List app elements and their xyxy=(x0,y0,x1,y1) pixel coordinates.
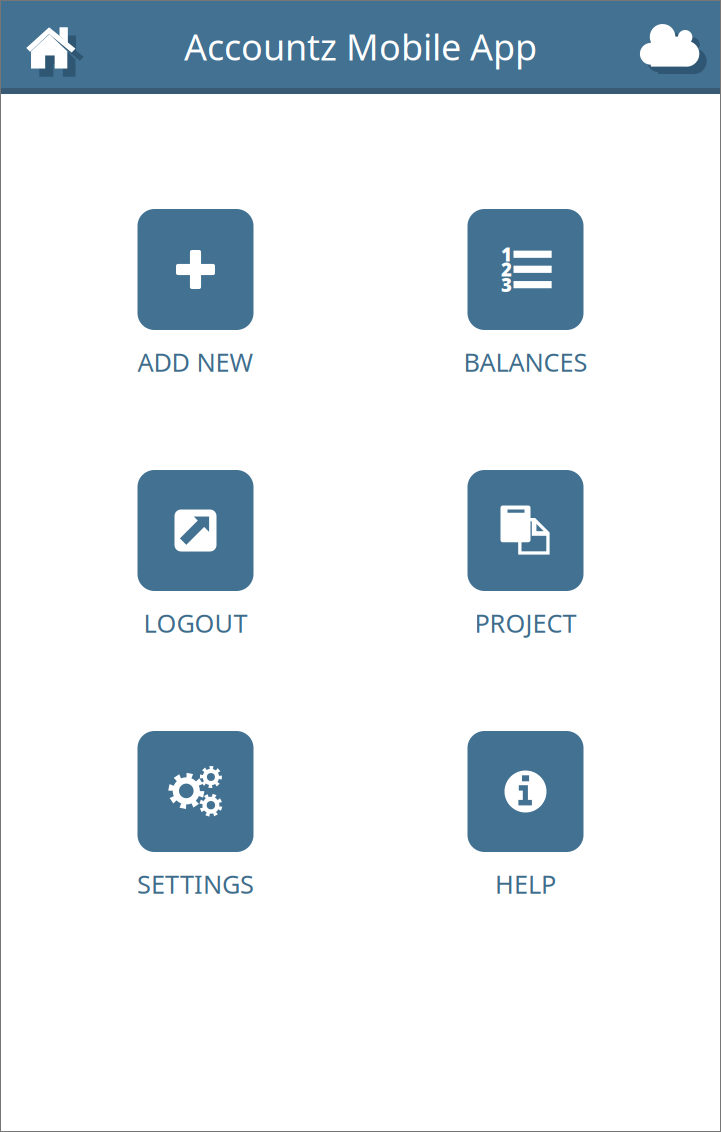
button[interactable]: Cloud sync xyxy=(611,0,721,88)
button[interactable]: Home xyxy=(0,0,110,88)
staticText: HELP xyxy=(495,867,556,901)
staticText: LOGOUT xyxy=(143,606,247,640)
staticText: ADD NEW xyxy=(137,345,253,379)
button[interactable]: SETTINGS xyxy=(45,731,345,897)
button[interactable]: 1 xyxy=(375,209,675,375)
staticText: BALANCES xyxy=(463,345,587,379)
button[interactable]: LOGOUT xyxy=(45,470,345,636)
staticText: 1 xyxy=(501,242,512,267)
staticText: 3 xyxy=(501,272,512,297)
button[interactable]: PROJECT xyxy=(375,470,675,636)
staticText: SETTINGS xyxy=(137,867,254,901)
staticText: PROJECT xyxy=(474,606,576,640)
staticText: Accountz Mobile App xyxy=(184,23,537,70)
button[interactable]: HELP xyxy=(375,731,675,897)
button[interactable]: ADD NEW xyxy=(45,209,345,375)
staticText: 2 xyxy=(501,257,512,282)
